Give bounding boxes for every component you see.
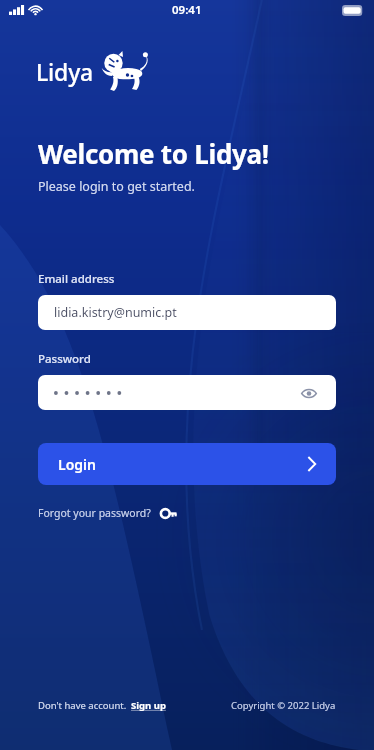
staticText: Lidya <box>36 56 94 87</box>
button[interactable]: Forgot your password? <box>38 506 177 520</box>
staticText: Password <box>38 351 91 367</box>
button[interactable]: Show password <box>38 375 336 410</box>
staticText: Please login to get started. <box>38 178 195 195</box>
staticText: lidia.kistry@numic.pt <box>54 304 177 321</box>
staticText: Copyright © 2022 Lidya <box>231 699 336 712</box>
button[interactable]: lidia.kistry@numic.pt <box>38 295 336 330</box>
staticText: Sign up <box>131 699 166 712</box>
staticText: 09:41 <box>172 2 202 18</box>
button[interactable]: Login <box>38 443 336 485</box>
button[interactable]: Show password <box>298 382 320 404</box>
staticText: Email address <box>38 271 115 287</box>
staticText: Welcome to Lidya! <box>38 136 269 171</box>
staticText: Login <box>58 455 96 474</box>
button[interactable]: Don't have account. <box>38 699 166 712</box>
staticText: Don't have account. <box>38 699 127 712</box>
staticText: Forgot your password? <box>38 506 151 520</box>
